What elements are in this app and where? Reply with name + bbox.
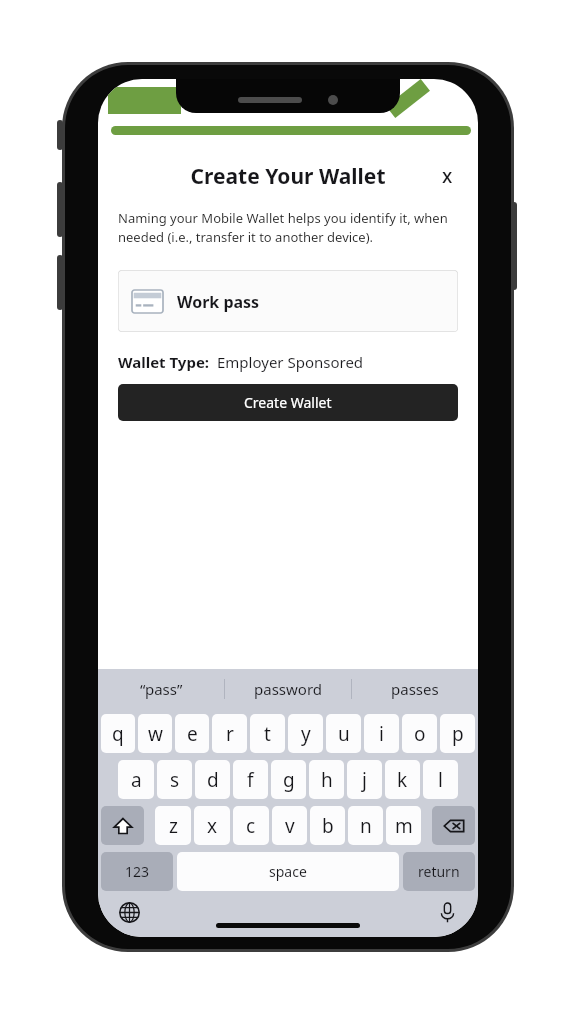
staticText: u xyxy=(338,721,350,747)
button[interactable]: m xyxy=(386,806,421,845)
staticText: z xyxy=(169,813,178,839)
button[interactable]: Voice input xyxy=(432,897,462,927)
button[interactable]: v xyxy=(272,806,307,845)
button[interactable]: o xyxy=(402,714,437,753)
button[interactable]: z xyxy=(155,806,191,845)
staticText: r xyxy=(226,721,234,747)
staticText: passes xyxy=(391,679,439,699)
staticText: 123 xyxy=(125,862,150,881)
staticText: n xyxy=(360,813,372,839)
staticText: b xyxy=(322,813,334,839)
button[interactable]: n xyxy=(348,806,383,845)
button[interactable]: space xyxy=(177,852,399,891)
staticText: y xyxy=(301,721,311,747)
staticText: return xyxy=(418,862,460,881)
button[interactable]: Create Wallet xyxy=(118,384,458,421)
staticText: “pass” xyxy=(140,679,183,699)
staticText: e xyxy=(187,721,198,747)
staticText: w xyxy=(148,721,163,747)
staticText: l xyxy=(438,767,443,793)
button[interactable]: “pass” xyxy=(98,669,224,709)
staticText: v xyxy=(285,813,295,839)
button[interactable]: t xyxy=(250,714,285,753)
staticText: j xyxy=(362,767,367,793)
staticText: Wallet Type: xyxy=(118,352,210,372)
button[interactable]: r xyxy=(212,714,247,753)
staticText: g xyxy=(283,767,295,793)
staticText: Naming your Mobile Wallet helps you iden… xyxy=(118,209,458,246)
button[interactable]: a xyxy=(118,760,154,799)
staticText: i xyxy=(379,721,384,747)
button[interactable]: 123 xyxy=(101,852,173,891)
button[interactable]: p xyxy=(440,714,475,753)
button[interactable]: h xyxy=(309,760,344,799)
staticText: c xyxy=(246,813,256,839)
button[interactable]: f xyxy=(233,760,268,799)
staticText: s xyxy=(170,767,180,793)
staticText: Create Wallet xyxy=(244,393,332,412)
button[interactable]: passes xyxy=(352,669,478,709)
staticText: m xyxy=(395,813,413,839)
staticText: o xyxy=(414,721,426,747)
button[interactable]: u xyxy=(326,714,361,753)
button[interactable]: Change keyboard xyxy=(114,897,144,927)
button[interactable]: password xyxy=(225,669,351,709)
staticText: p xyxy=(452,721,464,747)
staticText: k xyxy=(397,767,408,793)
button[interactable]: b xyxy=(310,806,345,845)
staticText: x xyxy=(207,813,218,839)
button[interactable]: s xyxy=(157,760,192,799)
staticText: space xyxy=(269,862,307,881)
staticText: a xyxy=(131,767,142,793)
button[interactable]: x xyxy=(194,806,230,845)
button[interactable]: w xyxy=(138,714,172,753)
staticText: f xyxy=(247,767,254,793)
staticText: t xyxy=(264,721,271,747)
staticText: h xyxy=(321,767,333,793)
button[interactable]: l xyxy=(423,760,458,799)
button[interactable]: g xyxy=(271,760,306,799)
staticText: password xyxy=(254,679,322,699)
button[interactable]: c xyxy=(233,806,269,845)
staticText: d xyxy=(207,767,219,793)
button[interactable]: return xyxy=(403,852,475,891)
button[interactable]: y xyxy=(288,714,323,753)
button[interactable]: Shift xyxy=(101,806,144,845)
button[interactable]: Backspace xyxy=(432,806,475,845)
button[interactable]: e xyxy=(175,714,209,753)
staticText: Create Your Wallet xyxy=(190,162,386,191)
button[interactable]: i xyxy=(364,714,399,753)
staticText: Work pass xyxy=(177,291,260,313)
staticText: q xyxy=(112,721,124,747)
staticText: x xyxy=(442,163,453,189)
button[interactable]: Work pass xyxy=(118,270,458,332)
button[interactable]: d xyxy=(195,760,230,799)
staticText: Employer Sponsored xyxy=(217,352,364,372)
button[interactable]: Close xyxy=(430,159,464,193)
button[interactable]: j xyxy=(347,760,382,799)
button[interactable]: q xyxy=(101,714,135,753)
button[interactable]: k xyxy=(385,760,420,799)
